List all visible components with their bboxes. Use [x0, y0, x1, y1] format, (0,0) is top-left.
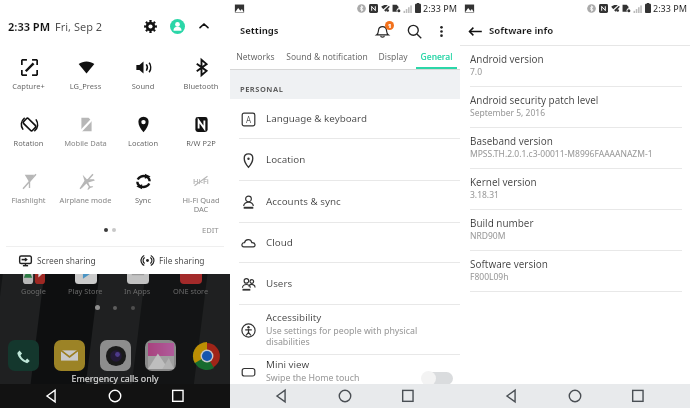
staticText: MPSS.TH.2.0.1.c3-00011-M8996FAAAANAZM-1	[470, 148, 653, 160]
button[interactable]: Hi-Fi	[172, 166, 230, 223]
button[interactable]: Software version	[460, 251, 690, 292]
staticText: Build number	[470, 216, 534, 229]
button[interactable]: Sync	[114, 166, 172, 223]
button[interactable]: A	[230, 99, 460, 139]
button[interactable]: Android version	[460, 46, 690, 87]
button[interactable]: Back	[466, 22, 484, 40]
staticText: File sharing	[159, 255, 205, 266]
button[interactable]: Build number	[460, 210, 690, 251]
staticText: Networks	[233, 51, 278, 63]
staticText: Flashlight	[0, 195, 57, 205]
staticText: EDIT	[202, 225, 219, 235]
staticText: Mini view	[266, 358, 310, 371]
button[interactable]: Display	[376, 45, 410, 69]
button[interactable]: Recents	[398, 386, 418, 406]
staticText: Hi-Fi	[193, 176, 209, 186]
button[interactable]: Networks	[233, 45, 278, 69]
staticText: R/W P2P	[172, 138, 230, 148]
staticText: Accounts & sync	[266, 195, 341, 208]
staticText: Android version	[470, 52, 544, 65]
button[interactable]: Recents	[168, 386, 188, 406]
staticText: 1	[388, 22, 392, 30]
staticText: NRD90M	[470, 230, 506, 242]
staticText: Hi-Fi Quad DAC	[172, 195, 230, 214]
staticText: 7.0	[470, 66, 483, 78]
button[interactable]: Bluetooth	[172, 52, 230, 109]
button[interactable]: Back	[272, 386, 292, 406]
staticText: PERSONAL	[240, 84, 284, 94]
staticText: Sound & notification	[284, 51, 370, 63]
staticText: Sound	[114, 81, 172, 91]
button[interactable]: Mobile Data	[57, 109, 114, 166]
staticText: Language & keyboard	[266, 112, 367, 125]
button[interactable]: File sharing	[115, 247, 230, 274]
button[interactable]: EDIT	[202, 225, 219, 235]
button[interactable]: Android security patch level	[460, 87, 690, 128]
staticText: Settings	[240, 24, 279, 37]
button[interactable]: Location	[114, 109, 172, 166]
staticText: Airplane mode	[57, 195, 114, 205]
button[interactable]: Rotation	[0, 109, 57, 166]
staticText: Users	[266, 277, 293, 290]
button[interactable]: Accounts & sync	[230, 181, 460, 223]
button[interactable]: More options	[430, 20, 452, 42]
button[interactable]: Capture+	[0, 52, 57, 109]
button[interactable]: Search	[402, 19, 426, 43]
staticText: Accessibility	[266, 311, 322, 324]
staticText: Play Store	[68, 286, 103, 296]
button[interactable]: Kernel version	[460, 169, 690, 210]
button[interactable]: Airplane mode	[57, 166, 114, 223]
staticText: September 5, 2016	[470, 107, 546, 119]
staticText: Fri, Sep 2	[55, 19, 103, 34]
staticText: Cloud	[266, 236, 293, 249]
staticText: Capture+	[0, 81, 57, 91]
button[interactable]: Back	[42, 386, 62, 406]
staticText: Location	[266, 153, 306, 166]
button[interactable]: Home	[105, 386, 125, 406]
staticText: LG_Press	[57, 81, 114, 91]
staticText: A	[246, 114, 252, 125]
staticText: Sync	[114, 195, 172, 205]
button[interactable]: Mini view	[230, 355, 460, 388]
staticText: General	[416, 51, 457, 63]
staticText: Screen sharing	[37, 255, 96, 266]
staticText: Mobile Data	[57, 138, 114, 148]
button[interactable]: Screen sharing	[0, 247, 115, 274]
staticText: Baseband version	[470, 134, 553, 147]
button[interactable]: Accessibility	[230, 305, 460, 355]
button[interactable]: Location	[230, 139, 460, 181]
button[interactable]: LG_Press	[57, 52, 114, 109]
staticText: Software version	[470, 257, 548, 270]
button[interactable]: Cloud	[230, 223, 460, 263]
button[interactable]: Home	[335, 386, 355, 406]
button[interactable]: Baseband version	[460, 128, 690, 169]
staticText: Bluetooth	[172, 81, 230, 91]
button[interactable]: Home	[565, 386, 585, 406]
button[interactable]: Settings	[138, 14, 162, 38]
staticText: Rotation	[0, 138, 57, 148]
staticText: Android security patch level	[470, 93, 599, 106]
staticText: ONE store	[173, 286, 209, 296]
button[interactable]: Notifications	[372, 19, 396, 43]
staticText: F800L09h	[470, 271, 509, 283]
staticText: Emergency calls only	[0, 372, 230, 384]
staticText: Kernel version	[470, 175, 537, 188]
button[interactable]: Recents	[628, 386, 648, 406]
button[interactable]: Users	[230, 263, 460, 305]
staticText: 2:33 PM	[8, 19, 51, 34]
button[interactable]: Sound	[114, 52, 172, 109]
staticText: Google	[21, 286, 46, 296]
button[interactable]: General	[416, 45, 457, 69]
staticText: 3.18.31	[470, 189, 499, 201]
button[interactable]: Collapse	[192, 14, 216, 38]
button[interactable]: Sound & notification	[284, 45, 370, 69]
button[interactable]: Flashlight	[0, 166, 57, 223]
button[interactable]: User	[165, 14, 189, 38]
staticText: 2:33 PM	[653, 2, 687, 14]
staticText: 2:33 PM	[423, 2, 457, 14]
button[interactable]: R/W P2P	[172, 109, 230, 166]
button[interactable]: Back	[502, 386, 522, 406]
staticText: Location	[114, 138, 172, 148]
staticText: Use settings for people with physical di…	[266, 325, 418, 348]
staticText: Swipe the Home touch	[266, 372, 418, 384]
